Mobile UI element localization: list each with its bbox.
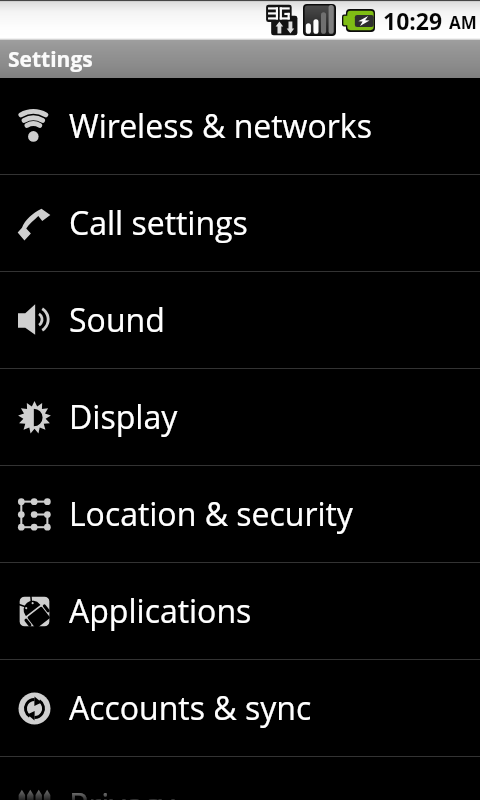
staticText: Sound <box>69 298 165 342</box>
button[interactable]: Location & security <box>0 466 480 562</box>
staticText: Accounts & sync <box>69 686 312 730</box>
staticText: Applications <box>69 589 252 633</box>
staticText: Location & security <box>69 492 353 536</box>
button[interactable]: Call settings <box>0 175 480 271</box>
button[interactable]: Applications <box>0 563 480 659</box>
button[interactable]: Display <box>0 369 480 465</box>
staticText: 10:29 <box>383 5 443 36</box>
staticText: Settings <box>8 45 93 74</box>
staticText: Wireless & networks <box>69 104 372 148</box>
staticText: AM <box>449 11 477 34</box>
staticText: Call settings <box>69 201 248 245</box>
button[interactable]: Sound <box>0 272 480 368</box>
staticText: Privacy <box>69 783 175 800</box>
button[interactable]: Accounts & sync <box>0 660 480 756</box>
button[interactable]: Privacy <box>0 757 480 800</box>
staticText: Display <box>69 395 178 439</box>
button[interactable]: Wireless & networks <box>0 78 480 174</box>
